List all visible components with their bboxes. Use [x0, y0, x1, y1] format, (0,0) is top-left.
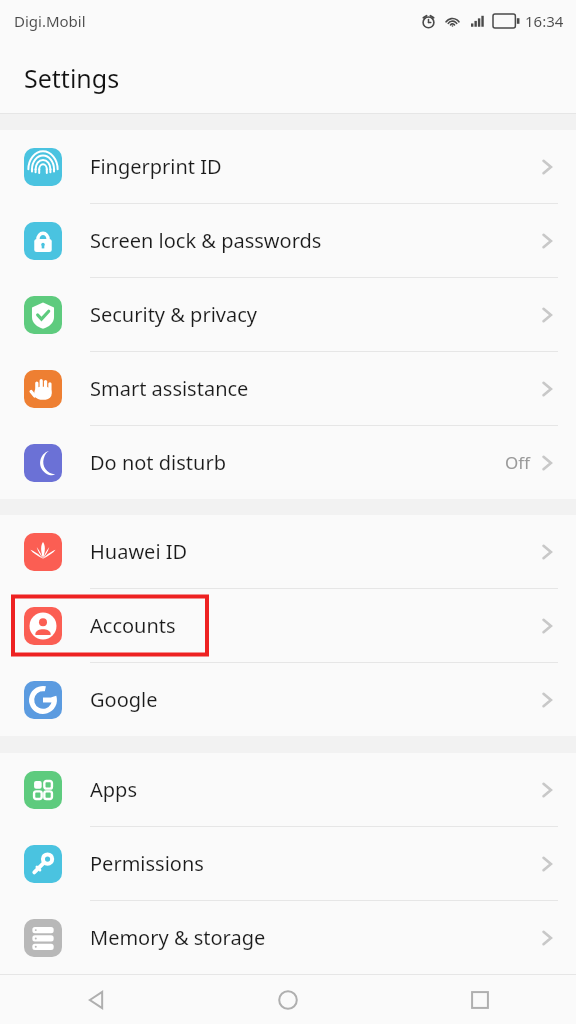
staticText: Permissions	[90, 850, 204, 877]
button[interactable]: Do not disturb	[0, 426, 576, 499]
staticText: Memory & storage	[90, 924, 266, 951]
button[interactable]: Smart assistance	[0, 352, 576, 425]
button[interactable]: Memory & storage	[0, 901, 576, 974]
staticText: Settings	[24, 61, 120, 95]
staticText: 16:34	[525, 11, 564, 31]
button[interactable]: Huawei ID	[0, 515, 576, 588]
button[interactable]: Screen lock & passwords	[0, 204, 576, 277]
staticText: Digi.Mobil	[14, 11, 86, 31]
staticText: Screen lock & passwords	[90, 227, 322, 254]
staticText: Accounts	[90, 612, 176, 639]
staticText: Smart assistance	[90, 375, 249, 402]
staticText: Security & privacy	[90, 301, 257, 328]
button[interactable]: Apps	[0, 753, 576, 826]
staticText: Apps	[90, 776, 137, 803]
button[interactable]: Home	[192, 975, 384, 1024]
staticText: Off	[505, 451, 530, 474]
button[interactable]: Security & privacy	[0, 278, 576, 351]
button[interactable]: Accounts	[0, 589, 576, 662]
button[interactable]: Fingerprint ID	[0, 130, 576, 203]
button[interactable]: Permissions	[0, 827, 576, 900]
staticText: Google	[90, 686, 158, 713]
staticText: Do not disturb	[90, 449, 226, 476]
button[interactable]: Back	[0, 975, 192, 1024]
button[interactable]: Google	[0, 663, 576, 736]
staticText: Huawei ID	[90, 538, 188, 565]
button[interactable]: Recents	[384, 975, 576, 1024]
staticText: Fingerprint ID	[90, 153, 222, 180]
